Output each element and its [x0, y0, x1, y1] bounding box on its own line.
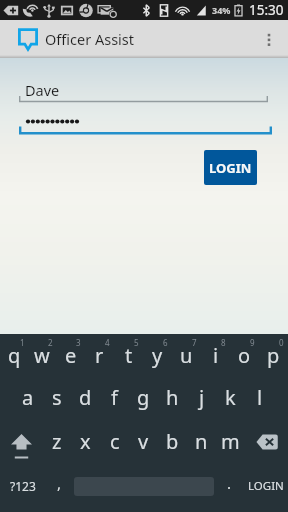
staticText: 7 [192, 337, 197, 348]
button[interactable]: b [158, 419, 187, 464]
button[interactable]: LOGIN [244, 462, 288, 510]
staticText: y [152, 342, 163, 369]
button[interactable]: f [100, 376, 129, 419]
button[interactable]: h [158, 376, 187, 419]
button[interactable]: 9 [230, 334, 259, 376]
staticText: c [110, 428, 120, 455]
staticText: n [195, 428, 208, 455]
button[interactable]: ?123 [0, 462, 45, 510]
staticText: a [22, 384, 34, 411]
staticText: . [227, 473, 232, 493]
staticText: 34% [212, 4, 231, 16]
staticText: p [267, 342, 280, 369]
staticText: 4 [105, 337, 110, 348]
button[interactable]: l [245, 376, 274, 419]
staticText: o [238, 342, 251, 369]
staticText: q [8, 342, 21, 369]
staticText: k [225, 384, 236, 411]
staticText: v [138, 428, 149, 455]
staticText: LOGIN [248, 478, 284, 494]
staticText: b [166, 428, 179, 455]
button[interactable]: a [14, 376, 42, 419]
staticText: 8 [221, 337, 226, 348]
staticText: i [213, 342, 219, 369]
staticText: j [199, 384, 205, 411]
button[interactable]: j [187, 376, 216, 419]
staticText: 9 [250, 337, 255, 348]
button[interactable]: x [71, 419, 100, 464]
staticText: 2 [48, 337, 53, 348]
staticText: x [80, 428, 91, 455]
staticText: z [52, 428, 62, 455]
button[interactable]: n [187, 419, 216, 464]
button[interactable]: v [129, 419, 158, 464]
staticText: , [57, 473, 62, 493]
staticText: u [180, 342, 193, 369]
button[interactable]: . [214, 462, 244, 510]
staticText: 3 [76, 337, 81, 348]
staticText: f [111, 384, 118, 411]
staticText: e [65, 342, 77, 369]
button[interactable]: k [216, 376, 245, 419]
button[interactable]: 3 [56, 334, 85, 376]
staticText: 0 [279, 337, 284, 348]
button[interactable]: 0 [259, 334, 288, 376]
staticText: 1 [20, 337, 25, 348]
staticText: m [221, 428, 240, 455]
button[interactable]: , [45, 462, 74, 510]
staticText: r [95, 342, 104, 369]
staticText: 5 [134, 337, 139, 348]
button[interactable]: m [216, 419, 245, 464]
button[interactable]: c [100, 419, 129, 464]
staticText: h [166, 384, 179, 411]
staticText: ?123 [10, 478, 36, 494]
button[interactable]: 7 [172, 334, 201, 376]
button[interactable]: 1 [0, 334, 28, 376]
staticText: s [52, 384, 62, 411]
staticText: Officer Assist [45, 29, 135, 49]
button[interactable]: s [42, 376, 71, 419]
button[interactable]: Shift [0, 419, 43, 464]
staticText: 6 [163, 337, 168, 348]
button[interactable]: Backspace [245, 419, 288, 464]
button[interactable]: LOGIN [204, 150, 257, 185]
button[interactable]: 2 [28, 334, 56, 376]
staticText: g [137, 384, 150, 411]
button[interactable]: 5 [114, 334, 143, 376]
staticText: t [125, 342, 133, 369]
staticText: d [79, 384, 92, 411]
staticText: w [34, 342, 50, 369]
staticText: LOGIN [209, 159, 252, 177]
button[interactable]: g [129, 376, 158, 419]
staticText: 15:30 [249, 1, 284, 19]
button[interactable]: d [71, 376, 100, 419]
staticText: l [257, 384, 263, 411]
button[interactable]: More options [250, 20, 288, 58]
button[interactable]: 4 [85, 334, 114, 376]
staticText: Dave [25, 80, 60, 100]
button[interactable]: 8 [201, 334, 230, 376]
button[interactable]: 6 [143, 334, 172, 376]
button[interactable]: z [43, 419, 71, 464]
